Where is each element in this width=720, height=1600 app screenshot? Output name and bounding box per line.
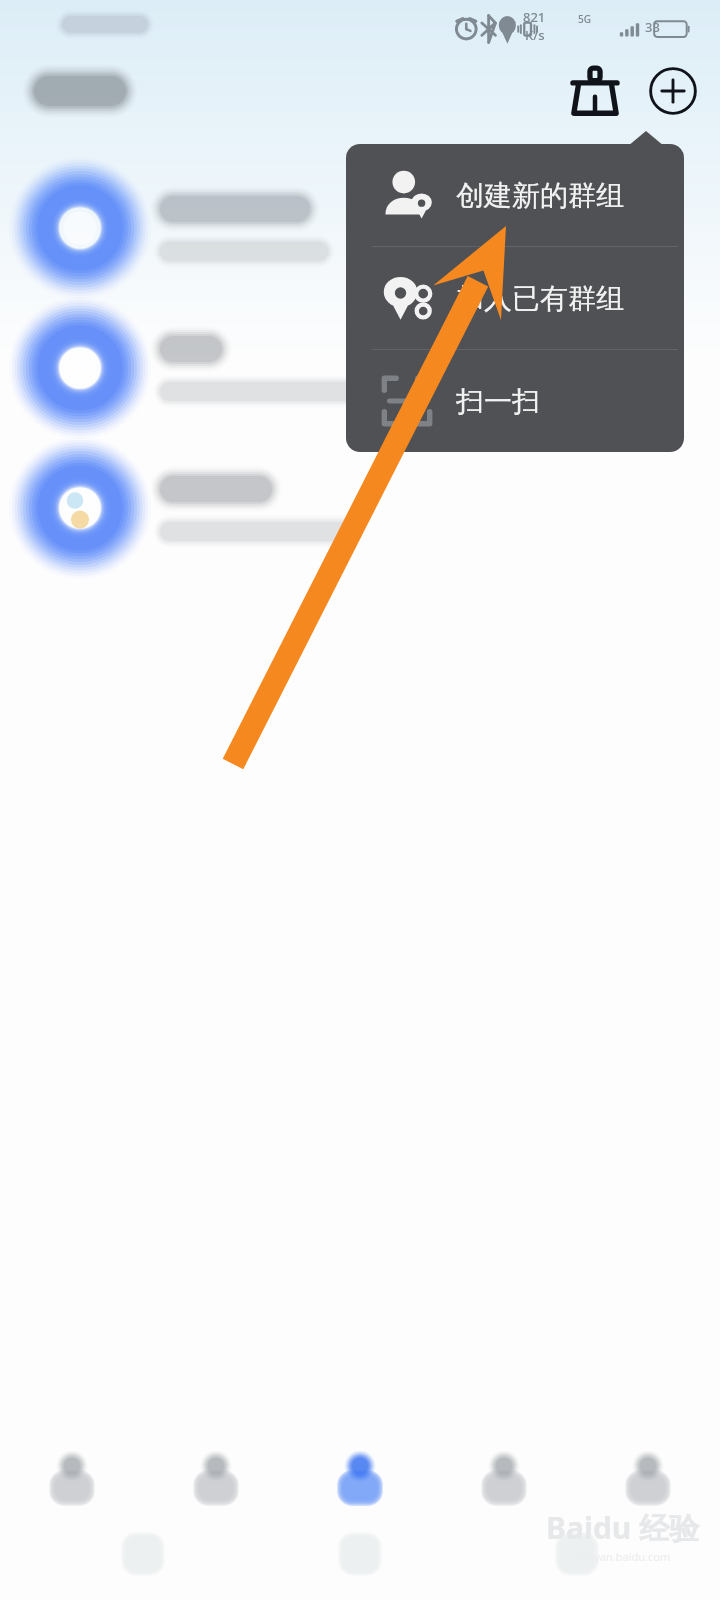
button[interactable]: 定位	[288, 1430, 432, 1522]
button[interactable]: 创建新的群组	[346, 144, 684, 246]
button[interactable]: 清理	[564, 60, 626, 122]
staticText: 5G	[578, 12, 591, 26]
staticText: 创建新的群组	[456, 178, 624, 213]
button[interactable]: 扫一扫	[346, 350, 684, 452]
button[interactable]	[0, 438, 720, 578]
button[interactable]: 发现	[432, 1430, 576, 1522]
staticText: jingyan.baidu.com	[575, 1549, 671, 1564]
button[interactable]: 添加	[642, 60, 704, 122]
staticText: K/s	[525, 26, 545, 44]
staticText: 扫一扫	[456, 384, 540, 419]
button[interactable]: 加入已有群组	[346, 247, 684, 349]
staticText: 33	[645, 18, 660, 36]
staticText: 加入已有群组	[456, 281, 624, 316]
button[interactable]: 联系	[144, 1430, 288, 1522]
button[interactable]: 我的	[576, 1430, 720, 1522]
staticText: 821	[523, 8, 546, 26]
button[interactable]	[0, 298, 720, 438]
button[interactable]: 消息	[0, 1430, 144, 1522]
staticText: Baidu 经验	[546, 1507, 700, 1548]
button[interactable]	[0, 158, 720, 298]
